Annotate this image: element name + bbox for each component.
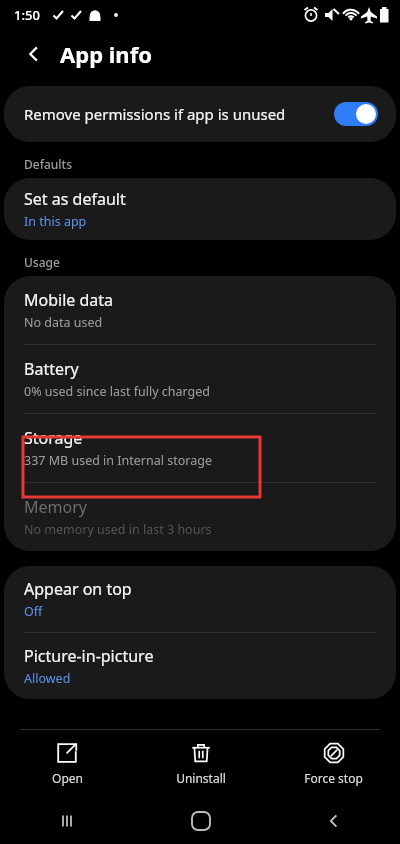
- button[interactable]: Uninstall: [134, 730, 267, 797]
- staticText: In this app: [24, 213, 87, 230]
- staticText: App info: [60, 39, 152, 69]
- staticText: 0% used since last fully charged: [24, 383, 211, 400]
- button[interactable]: Memory: [4, 483, 396, 551]
- staticText: Storage: [24, 427, 83, 449]
- staticText: 1:50: [14, 6, 40, 24]
- staticText: Off: [24, 603, 43, 620]
- button[interactable]: Home: [134, 797, 267, 844]
- staticText: Mobile data: [24, 289, 114, 311]
- staticText: Remove permissions if app is unused: [24, 104, 334, 124]
- button[interactable]: Picture-in-picture: [4, 633, 396, 699]
- button[interactable]: Recent apps: [0, 797, 134, 844]
- button[interactable]: Force stop: [267, 730, 400, 797]
- staticText: Force stop: [304, 770, 363, 786]
- button[interactable]: Open: [0, 730, 134, 797]
- button[interactable]: Storage: [4, 414, 396, 482]
- staticText: Battery: [24, 358, 79, 380]
- button[interactable]: Mobile data: [4, 276, 396, 344]
- staticText: Defaults: [24, 156, 73, 172]
- staticText: Usage: [24, 254, 60, 270]
- staticText: Uninstall: [176, 770, 226, 786]
- staticText: No data used: [24, 314, 103, 331]
- button[interactable]: Appear on top: [4, 566, 396, 632]
- button[interactable]: Battery: [4, 345, 396, 413]
- staticText: Picture-in-picture: [24, 645, 154, 667]
- button[interactable]: Back: [16, 36, 52, 72]
- staticText: No memory used in last 3 hours: [24, 521, 212, 538]
- staticText: Appear on top: [24, 578, 132, 600]
- staticText: 337 MB used in Internal storage: [24, 452, 212, 469]
- staticText: Open: [52, 770, 83, 786]
- button[interactable]: Set as default: [4, 178, 396, 240]
- button[interactable]: Remove permissions if app is unused: [4, 86, 396, 142]
- staticText: Allowed: [24, 670, 71, 687]
- staticText: Set as default: [24, 188, 126, 210]
- staticText: Memory: [24, 496, 87, 518]
- button[interactable]: Back: [267, 797, 400, 844]
